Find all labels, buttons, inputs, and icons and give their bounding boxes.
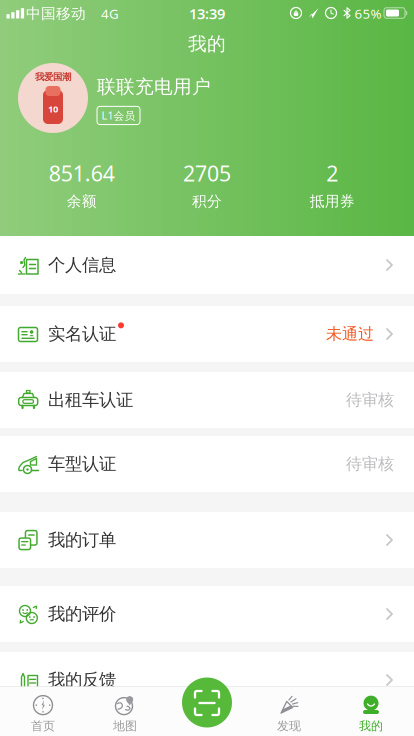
staticText: 2 <box>326 159 338 187</box>
button[interactable]: 实名认证 <box>0 306 414 362</box>
staticText: 10 <box>48 103 58 115</box>
staticText: 4G <box>101 5 119 22</box>
staticText: 13:39 <box>189 4 225 23</box>
button[interactable]: 扫码充电 <box>182 677 232 727</box>
staticText: 车型认证 <box>48 453 116 475</box>
button[interactable]: 出租车认证 <box>0 372 414 428</box>
staticText: 中国移动 <box>26 4 86 22</box>
staticText: 地图 <box>113 719 137 733</box>
button[interactable]: 我的订单 <box>0 512 414 568</box>
staticText: 出租车认证 <box>48 389 133 411</box>
button[interactable]: 851.64 <box>19 159 144 210</box>
staticText: 2705 <box>183 159 231 187</box>
staticText: 851.64 <box>49 159 115 187</box>
staticText: 我的 <box>188 32 226 55</box>
staticText: 待审核 <box>346 454 394 474</box>
button[interactable]: 我的 <box>330 686 412 736</box>
staticText: L1会员 <box>101 108 135 123</box>
button[interactable]: 头像 <box>18 63 88 133</box>
staticText: 65% <box>354 5 381 22</box>
button[interactable]: 2 <box>270 159 395 210</box>
button[interactable]: 地图 <box>84 686 166 736</box>
button[interactable]: 我的评价 <box>0 586 414 642</box>
staticText: 我的评价 <box>48 603 116 625</box>
staticText: 我的反馈 <box>48 669 116 691</box>
staticText: 未通过 <box>326 324 374 344</box>
button[interactable]: 车型认证 <box>0 436 414 492</box>
button[interactable]: 2705 <box>144 159 270 210</box>
staticText: 实名认证 <box>48 323 116 345</box>
staticText: 余额 <box>67 192 97 210</box>
staticText: 抵用券 <box>310 192 355 210</box>
staticText: 联联充电用户 <box>97 75 211 98</box>
staticText: 积分 <box>192 192 222 210</box>
button[interactable]: 个人信息 <box>0 236 414 294</box>
staticText: 发现 <box>277 719 301 733</box>
button[interactable]: 发现 <box>248 686 330 736</box>
staticText: 我爱国潮 <box>35 71 71 83</box>
staticText: 我的订单 <box>48 529 116 551</box>
staticText: 个人信息 <box>48 254 116 276</box>
button[interactable]: 首页 <box>2 686 84 736</box>
staticText: 我的 <box>359 719 383 733</box>
staticText: 首页 <box>31 719 55 733</box>
button[interactable]: 我的反馈 <box>0 652 414 708</box>
staticText: 待审核 <box>346 390 394 410</box>
